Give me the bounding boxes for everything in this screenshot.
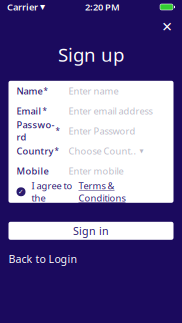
button[interactable]: ✓ [8, 181, 173, 203]
button[interactable]: Name [8, 81, 173, 101]
button[interactable]: Password [8, 121, 173, 141]
staticText: Enter email address [68, 105, 152, 117]
staticText: Choose Count.. [68, 145, 136, 157]
staticText: Enter Password [68, 125, 135, 137]
staticText: Email [16, 105, 41, 117]
staticText: ▾ [136, 146, 143, 155]
staticText: I agree to the [31, 179, 72, 204]
staticText: ✕ [161, 19, 172, 34]
staticText: Carrier [7, 1, 38, 13]
staticText: ✓ [18, 188, 24, 196]
staticText: * [43, 85, 47, 96]
staticText: Mobile [16, 165, 48, 177]
staticText: Name [16, 85, 42, 97]
button[interactable]: Close [156, 16, 178, 38]
button[interactable]: Back to Login [8, 252, 77, 266]
staticText: Sign up [58, 42, 124, 67]
staticText: 2:20 PM [85, 1, 120, 13]
staticText: Enter name [68, 85, 118, 97]
button[interactable]: Country [8, 141, 173, 161]
button[interactable]: Sign in [8, 222, 173, 240]
staticText: Enter mobile [68, 165, 123, 177]
staticText: ▼ [40, 3, 45, 11]
staticText: * [55, 125, 59, 136]
button[interactable]: Mobile [8, 161, 173, 181]
staticText: Country [16, 145, 53, 157]
staticText: Sign in [73, 224, 109, 238]
staticText: Password [16, 118, 54, 143]
button[interactable]: Email [8, 101, 173, 121]
staticText: * [42, 105, 46, 116]
staticText: * [54, 145, 58, 156]
staticText: Back to Login [8, 252, 77, 266]
staticText: Terms & Conditions [78, 179, 125, 204]
